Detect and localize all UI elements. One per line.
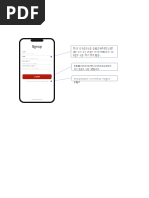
staticText: This is signup page where user can fill …: [73, 47, 114, 57]
staticText: Already have an account? Login: [25, 80, 48, 82]
staticText: The button is link to login page: [73, 77, 110, 84]
staticText: Password: [22, 60, 30, 62]
staticText: Email: [22, 56, 25, 57]
button[interactable]: Already have an account? Login: [20, 80, 54, 82]
staticText: Below the form is the button for Sign Up…: [73, 64, 111, 71]
button[interactable]: SIGN UP: [22, 74, 51, 79]
staticText: Enter your name: [22, 53, 34, 55]
staticText: Signup: [32, 45, 42, 48]
staticText: Confirm Password: [22, 65, 36, 67]
staticText: Re-enter your password: [22, 67, 39, 69]
staticText: Enter your password: [22, 63, 37, 64]
staticText: PDF: [5, 1, 39, 24]
staticText: Name: [22, 51, 26, 53]
staticText: SIGN UP: [34, 76, 40, 78]
staticText: Enter your email address: [22, 58, 39, 59]
